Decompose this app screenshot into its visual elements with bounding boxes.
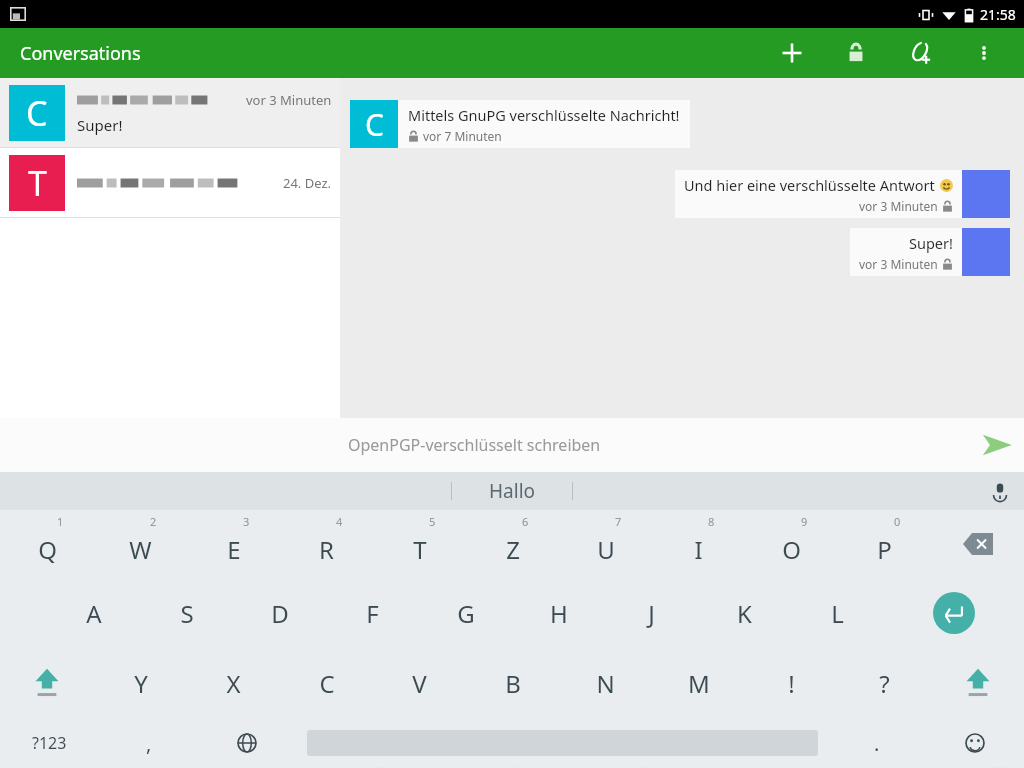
button[interactable]: Enter (884, 578, 1024, 648)
button[interactable]: Shift (931, 648, 1024, 718)
button[interactable]: 5 (373, 510, 466, 578)
button[interactable]: 3 (187, 510, 280, 578)
button[interactable]: V (373, 648, 466, 718)
staticText: Z (506, 533, 520, 566)
button[interactable]: 2 (94, 510, 187, 578)
button[interactable]: Attach file (888, 28, 952, 78)
button[interactable]: Backspace (931, 510, 1024, 578)
button[interactable]: B (466, 648, 559, 718)
button[interactable]: 0 (838, 510, 931, 578)
staticText: 5 (429, 514, 436, 529)
staticText: C (319, 667, 335, 700)
staticText: , (146, 730, 152, 757)
staticText: 8 (708, 514, 715, 529)
button[interactable]: D (233, 578, 326, 648)
staticText: . (874, 730, 880, 757)
staticText: C (26, 90, 48, 136)
staticText: Mittels GnuPG verschlüsselte Nachricht! (408, 105, 680, 125)
button[interactable]: T (0, 148, 340, 217)
button[interactable]: Shift (0, 648, 94, 718)
button[interactable]: Emoji (926, 718, 1024, 768)
button[interactable]: Y (94, 648, 187, 718)
staticText: Y (134, 667, 148, 700)
staticText: L (831, 597, 844, 630)
button[interactable]: A (47, 578, 140, 648)
button[interactable]: ! (745, 648, 838, 718)
staticText: W (129, 533, 152, 566)
button[interactable]: N (559, 648, 652, 718)
staticText: Conversations (20, 41, 141, 66)
staticText: I (694, 533, 703, 566)
button[interactable]: M (652, 648, 745, 718)
staticText: Super! (77, 115, 123, 135)
staticText: V (412, 667, 427, 700)
staticText: X (226, 667, 241, 700)
staticText: OpenPGP-verschlüsselt schreiben (348, 434, 970, 456)
button[interactable]: Space (296, 718, 828, 768)
staticText: P (877, 533, 892, 566)
staticText: vor 3 Minuten (246, 91, 332, 109)
staticText: O (782, 533, 801, 566)
button[interactable]: Super! (850, 228, 962, 276)
button[interactable]: J (605, 578, 698, 648)
button[interactable]: 1 (0, 510, 94, 578)
staticText: J (648, 597, 655, 630)
staticText: 0 (894, 514, 901, 529)
button[interactable]: S (140, 578, 233, 648)
staticText: T (28, 160, 47, 206)
staticText: C (365, 104, 384, 145)
staticText: 7 (615, 514, 622, 529)
button[interactable]: Encryption (824, 28, 888, 78)
staticText: ?123 (32, 732, 67, 754)
button[interactable]: Change language (198, 718, 296, 768)
button[interactable]: More options (952, 28, 1016, 78)
staticText: T (413, 533, 427, 566)
staticText: Q (38, 533, 57, 566)
staticText: Hallo (489, 478, 536, 504)
button[interactable]: . (828, 718, 926, 768)
button[interactable]: Add conversation (760, 28, 824, 78)
button[interactable]: L (791, 578, 884, 648)
staticText: ? (879, 667, 890, 700)
button[interactable]: C (280, 648, 373, 718)
button[interactable]: Voice input (976, 472, 1024, 510)
button[interactable]: 8 (652, 510, 745, 578)
staticText: 4 (336, 514, 343, 529)
staticText: K (737, 597, 752, 630)
button[interactable]: Mittels GnuPG verschlüsselte Nachricht! (398, 100, 690, 148)
staticText: H (550, 597, 568, 630)
staticText: 6 (522, 514, 529, 529)
staticText: E (227, 533, 241, 566)
button[interactable]: 7 (559, 510, 652, 578)
button[interactable]: , (99, 718, 198, 768)
staticText: M (688, 667, 710, 700)
button[interactable]: H (512, 578, 605, 648)
staticText: N (596, 667, 615, 700)
staticText: vor 3 Minuten (859, 256, 938, 272)
button[interactable]: F (326, 578, 419, 648)
button[interactable]: ? (838, 648, 931, 718)
button[interactable]: OpenPGP-verschlüsselt schreiben (0, 418, 1024, 472)
staticText: 1 (57, 514, 64, 529)
button[interactable]: X (187, 648, 280, 718)
staticText: G (457, 597, 475, 630)
button[interactable]: 9 (745, 510, 838, 578)
button[interactable]: 4 (280, 510, 373, 578)
staticText: U (597, 533, 615, 566)
staticText: 9 (801, 514, 808, 529)
staticText: D (271, 597, 289, 630)
button[interactable]: ?123 (0, 718, 99, 768)
staticText: vor 3 Minuten (859, 198, 938, 214)
staticText: F (366, 597, 379, 630)
button[interactable]: Und hier eine verschlüsselte Antwort (675, 170, 962, 218)
staticText: R (319, 533, 334, 566)
staticText: A (86, 597, 102, 630)
button[interactable]: G (419, 578, 512, 648)
button[interactable]: Hallo (452, 472, 572, 510)
staticText: S (180, 597, 194, 630)
button[interactable]: Send (970, 418, 1024, 472)
button[interactable]: C (0, 78, 340, 147)
button[interactable]: K (698, 578, 791, 648)
button[interactable]: 6 (466, 510, 559, 578)
staticText: 3 (243, 514, 250, 529)
